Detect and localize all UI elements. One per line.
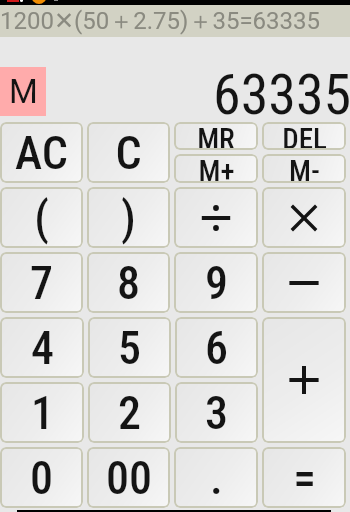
- button[interactable]: 00: [87, 447, 170, 508]
- staticText: 8: [117, 256, 140, 310]
- button[interactable]: 8: [87, 252, 170, 313]
- staticText: AC: [15, 126, 68, 180]
- staticText: 1: [31, 386, 54, 440]
- button[interactable]: 9: [174, 252, 258, 313]
- staticText: 1200✕(50＋2.75)＋35=63335: [0, 6, 320, 36]
- button[interactable]: M-: [262, 154, 346, 183]
- staticText: C: [115, 126, 142, 180]
- staticText: MR: [197, 122, 235, 150]
- staticText: 5: [118, 321, 141, 375]
- staticText: =: [293, 451, 316, 505]
- button[interactable]: MR: [174, 122, 258, 150]
- staticText: 3: [205, 386, 228, 440]
- button[interactable]: 3: [175, 382, 258, 443]
- button[interactable]: 7: [0, 252, 83, 313]
- button[interactable]: 1: [0, 382, 84, 443]
- button[interactable]: .: [174, 447, 258, 508]
- staticText: 7: [30, 256, 53, 310]
- staticText: 9: [205, 256, 228, 310]
- staticText: 4: [31, 321, 54, 375]
- button[interactable]: Multiply: [262, 187, 346, 248]
- button[interactable]: AC: [0, 122, 83, 183]
- button[interactable]: 4: [0, 317, 84, 378]
- button[interactable]: DEL: [262, 122, 346, 150]
- staticText: DEL: [282, 122, 327, 150]
- button[interactable]: =: [262, 447, 346, 508]
- staticText: 6: [205, 321, 228, 375]
- staticText: 0: [30, 451, 53, 505]
- button[interactable]: 2: [88, 382, 171, 443]
- staticText: (: [34, 191, 49, 245]
- button[interactable]: Memory indicator: [0, 67, 46, 116]
- staticText: M: [9, 72, 38, 111]
- staticText: M-: [289, 154, 320, 183]
- button[interactable]: (: [0, 187, 83, 248]
- staticText: 2: [118, 386, 141, 440]
- staticText: 00: [106, 451, 152, 505]
- button[interactable]: C: [87, 122, 170, 183]
- button[interactable]: 6: [175, 317, 258, 378]
- staticText: .: [210, 451, 223, 505]
- staticText: ): [121, 191, 136, 245]
- button[interactable]: 0: [0, 447, 83, 508]
- button[interactable]: ): [87, 187, 170, 248]
- staticText: M+: [198, 154, 235, 183]
- staticText: 63335: [213, 62, 350, 124]
- button[interactable]: Divide: [174, 187, 258, 248]
- button[interactable]: 5: [88, 317, 171, 378]
- button[interactable]: Plus: [262, 317, 346, 443]
- button[interactable]: M+: [174, 154, 258, 183]
- button[interactable]: Minus: [262, 252, 346, 313]
